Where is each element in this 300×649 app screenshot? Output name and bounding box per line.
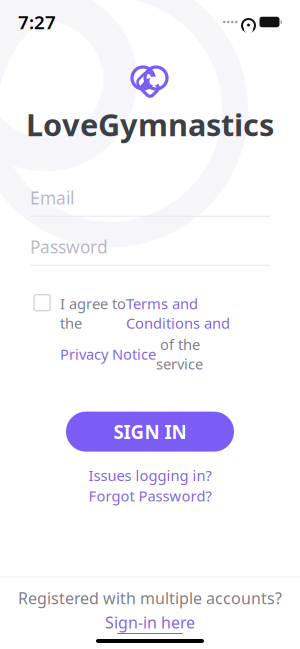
staticText: Terms and Conditions and	[126, 294, 230, 333]
button[interactable]: I agree to the	[0, 294, 300, 374]
staticText: Password	[30, 235, 108, 258]
staticText: LoveGymnastics	[26, 104, 274, 145]
staticText: Email	[30, 186, 74, 209]
staticText: Registered with multiple accounts?	[18, 587, 282, 609]
button[interactable]: Issues logging in?	[88, 466, 211, 485]
staticText: Forgot Password?	[88, 486, 211, 506]
staticText: SIGN IN	[113, 419, 186, 444]
button[interactable]: Forgot Password?	[88, 486, 211, 506]
staticText: Privacy Notice	[60, 344, 156, 364]
button[interactable]: SIGN IN	[66, 412, 234, 452]
staticText: 7:27	[18, 10, 56, 34]
staticText: of the service	[156, 335, 203, 374]
staticText: I agree to the	[60, 294, 126, 333]
staticText: Issues logging in?	[88, 466, 211, 485]
staticText: Sign-in here	[105, 612, 195, 633]
button[interactable]: Sign-in here	[105, 612, 195, 634]
